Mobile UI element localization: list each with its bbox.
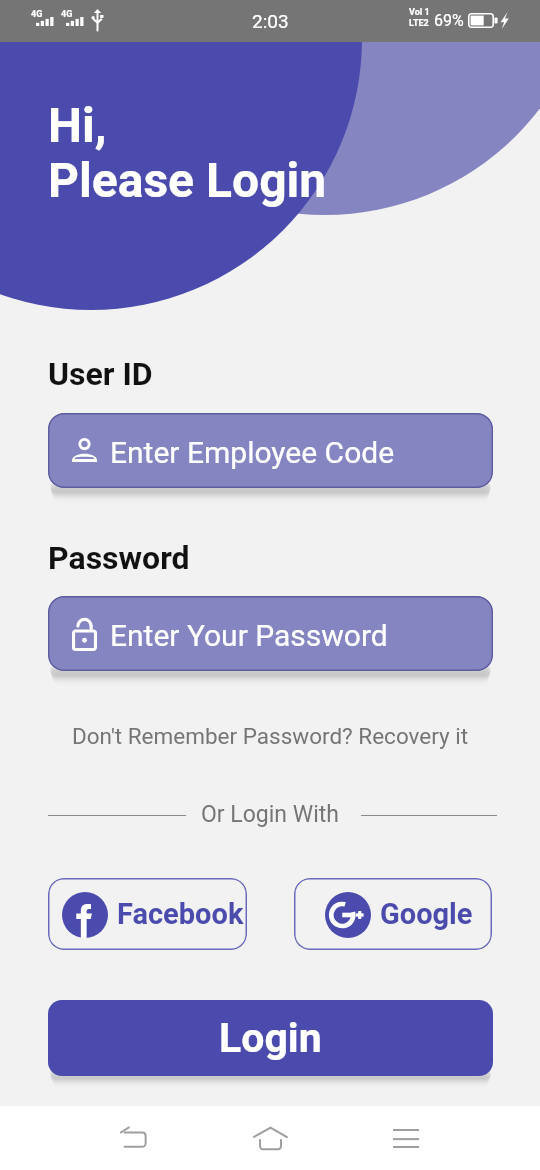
- staticText: Google: [380, 897, 473, 931]
- staticText: Password: [48, 539, 190, 577]
- button[interactable]: Login: [48, 1000, 493, 1076]
- staticText: Or Login With: [201, 801, 339, 828]
- staticText: Vol 1: [409, 7, 430, 18]
- staticText: 2:03: [252, 10, 289, 32]
- staticText: 69%: [434, 11, 464, 30]
- staticText: LTE2: [409, 18, 429, 29]
- button[interactable]: Back: [98, 1106, 168, 1170]
- staticText: 4G: [61, 9, 73, 20]
- staticText: Enter Your Password: [110, 618, 388, 653]
- button[interactable]: Google: [294, 878, 492, 950]
- staticText: Please Login: [48, 152, 327, 208]
- button[interactable]: Enter Employee Code: [48, 413, 493, 488]
- staticText: Enter Employee Code: [110, 435, 395, 470]
- button[interactable]: Facebook: [48, 878, 247, 950]
- button[interactable]: Recent apps: [371, 1106, 441, 1170]
- staticText: Login: [219, 1014, 322, 1062]
- staticText: 4G: [31, 9, 43, 20]
- button[interactable]: Home: [235, 1106, 305, 1170]
- button[interactable]: Don't Remember Password? Recovery it: [72, 723, 469, 749]
- button[interactable]: Enter Your Password: [48, 596, 493, 671]
- staticText: Facebook: [117, 897, 244, 931]
- staticText: User ID: [48, 355, 153, 393]
- staticText: Hi,: [48, 97, 107, 153]
